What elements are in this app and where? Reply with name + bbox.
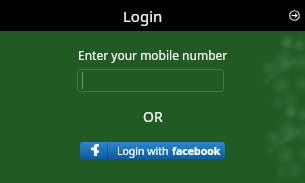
button[interactable] (77, 69, 224, 92)
button[interactable]: Next (284, 5, 305, 26)
staticText: Login with (117, 144, 172, 158)
button[interactable]: Login with (80, 142, 225, 159)
staticText: OR (143, 107, 163, 126)
staticText: facebook (172, 144, 221, 158)
staticText: Login (123, 6, 163, 26)
staticText: Enter your mobile number (78, 47, 228, 63)
